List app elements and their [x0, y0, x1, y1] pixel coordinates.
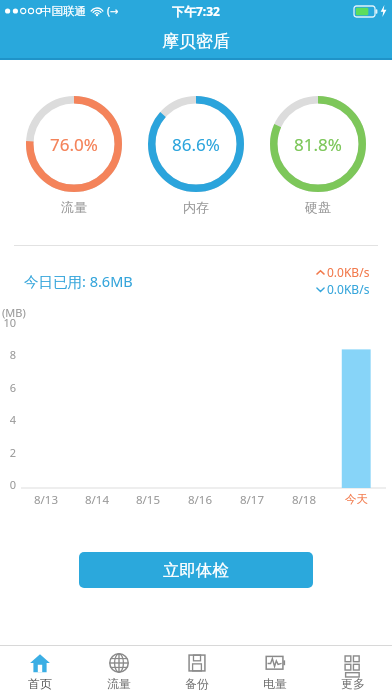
staticText: 10 [0, 315, 16, 330]
button[interactable]: 首页 [0, 646, 79, 696]
button[interactable]: 立即体检 [79, 552, 313, 588]
button[interactable]: 更多 [314, 646, 392, 696]
staticText: (→ [107, 4, 119, 18]
staticText: 2 [0, 445, 16, 460]
staticText: 电量 [263, 676, 287, 691]
staticText: 硬盘 [305, 199, 331, 215]
staticText: 今日已用: 8.6MB [24, 271, 133, 291]
staticText: 下午7:32 [172, 3, 220, 19]
staticText: (MB) [2, 305, 26, 320]
staticText: 81.8% [294, 133, 342, 156]
staticText: 更多 [341, 676, 365, 691]
staticText: 4 [0, 412, 16, 427]
staticText: 8/15 [136, 492, 161, 508]
staticText: 86.6% [172, 133, 220, 156]
staticText: 6 [0, 380, 16, 395]
staticText: 8 [0, 347, 16, 362]
staticText: 流量 [107, 676, 131, 691]
staticText: 8/18 [292, 492, 317, 508]
staticText: 76.0% [50, 133, 98, 156]
staticText: 8/17 [240, 492, 265, 508]
staticText: 0.0KB/s [327, 281, 370, 297]
button[interactable]: 流量 [79, 646, 158, 696]
button[interactable]: 电量 [236, 646, 314, 696]
staticText: 首页 [28, 676, 52, 691]
staticText: 8/13 [34, 492, 59, 508]
staticText: 0.0KB/s [327, 264, 370, 280]
staticText: 摩贝密盾 [162, 31, 230, 52]
staticText: 今天 [345, 492, 368, 506]
staticText: 内存 [183, 199, 209, 215]
staticText: 中国联通 [40, 4, 86, 18]
staticText: 流量 [61, 199, 87, 215]
staticText: 0 [0, 477, 16, 492]
button[interactable]: 备份 [158, 646, 236, 696]
staticText: 立即体检 [163, 560, 229, 581]
staticText: 8/14 [85, 492, 110, 508]
staticText: 8/16 [188, 492, 213, 508]
staticText: 备份 [185, 676, 209, 691]
